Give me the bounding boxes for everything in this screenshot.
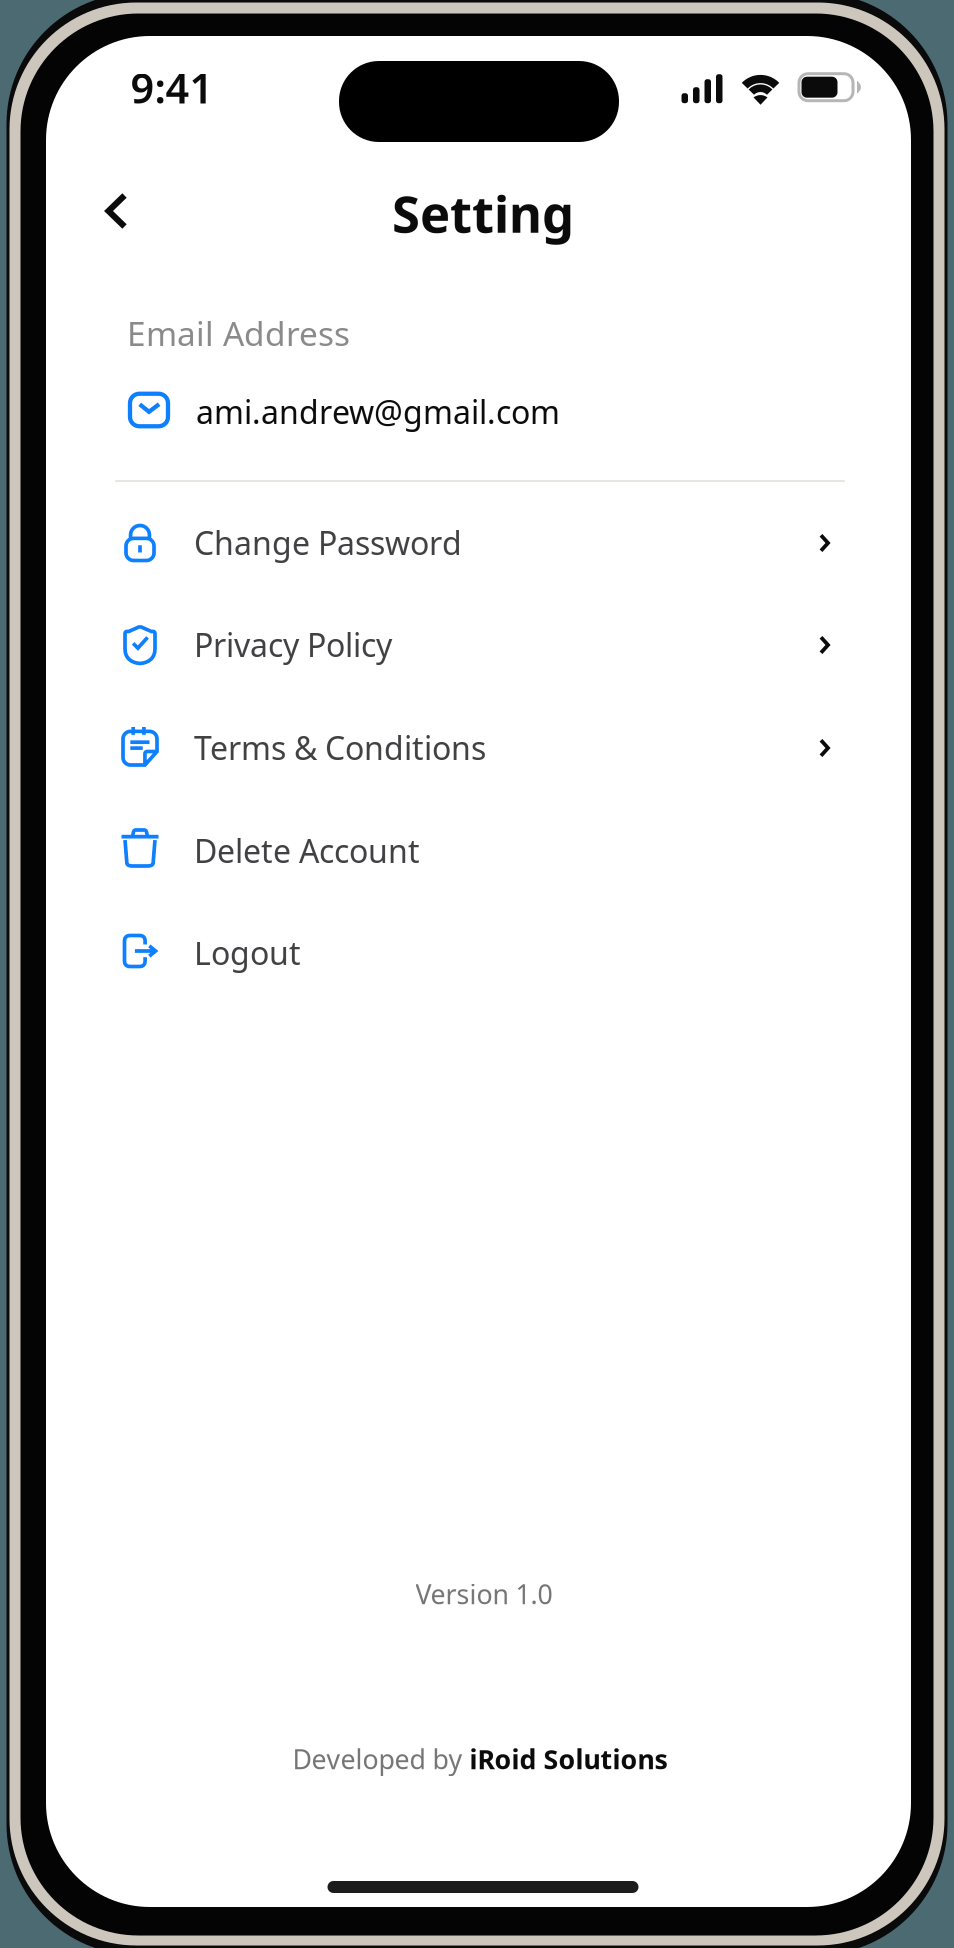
button[interactable]: Privacy Policy bbox=[115, 594, 835, 696]
button[interactable]: Back bbox=[79, 174, 153, 248]
staticText: iRoid Solutions bbox=[469, 1741, 667, 1777]
button[interactable]: Delete Account bbox=[115, 800, 835, 902]
staticText: Email Address bbox=[127, 311, 350, 355]
button[interactable]: Change Password bbox=[115, 492, 835, 594]
staticText: Delete Account bbox=[194, 829, 420, 872]
staticText: Logout bbox=[194, 931, 301, 974]
button[interactable]: Terms & Conditions bbox=[115, 697, 835, 799]
staticText: Change Password bbox=[194, 521, 462, 564]
staticText: 9:41 bbox=[130, 60, 213, 115]
staticText: Version 1.0 bbox=[415, 1576, 552, 1612]
button[interactable]: Logout bbox=[115, 902, 835, 1004]
button[interactable]: ami.andrew@gmail.com bbox=[115, 370, 835, 456]
staticText: Setting bbox=[392, 179, 574, 247]
staticText: Privacy Policy bbox=[194, 623, 392, 666]
staticText: Terms & Conditions bbox=[194, 726, 486, 769]
staticText: ami.andrew@gmail.com bbox=[196, 390, 560, 433]
staticText: Developed by bbox=[292, 1741, 469, 1777]
